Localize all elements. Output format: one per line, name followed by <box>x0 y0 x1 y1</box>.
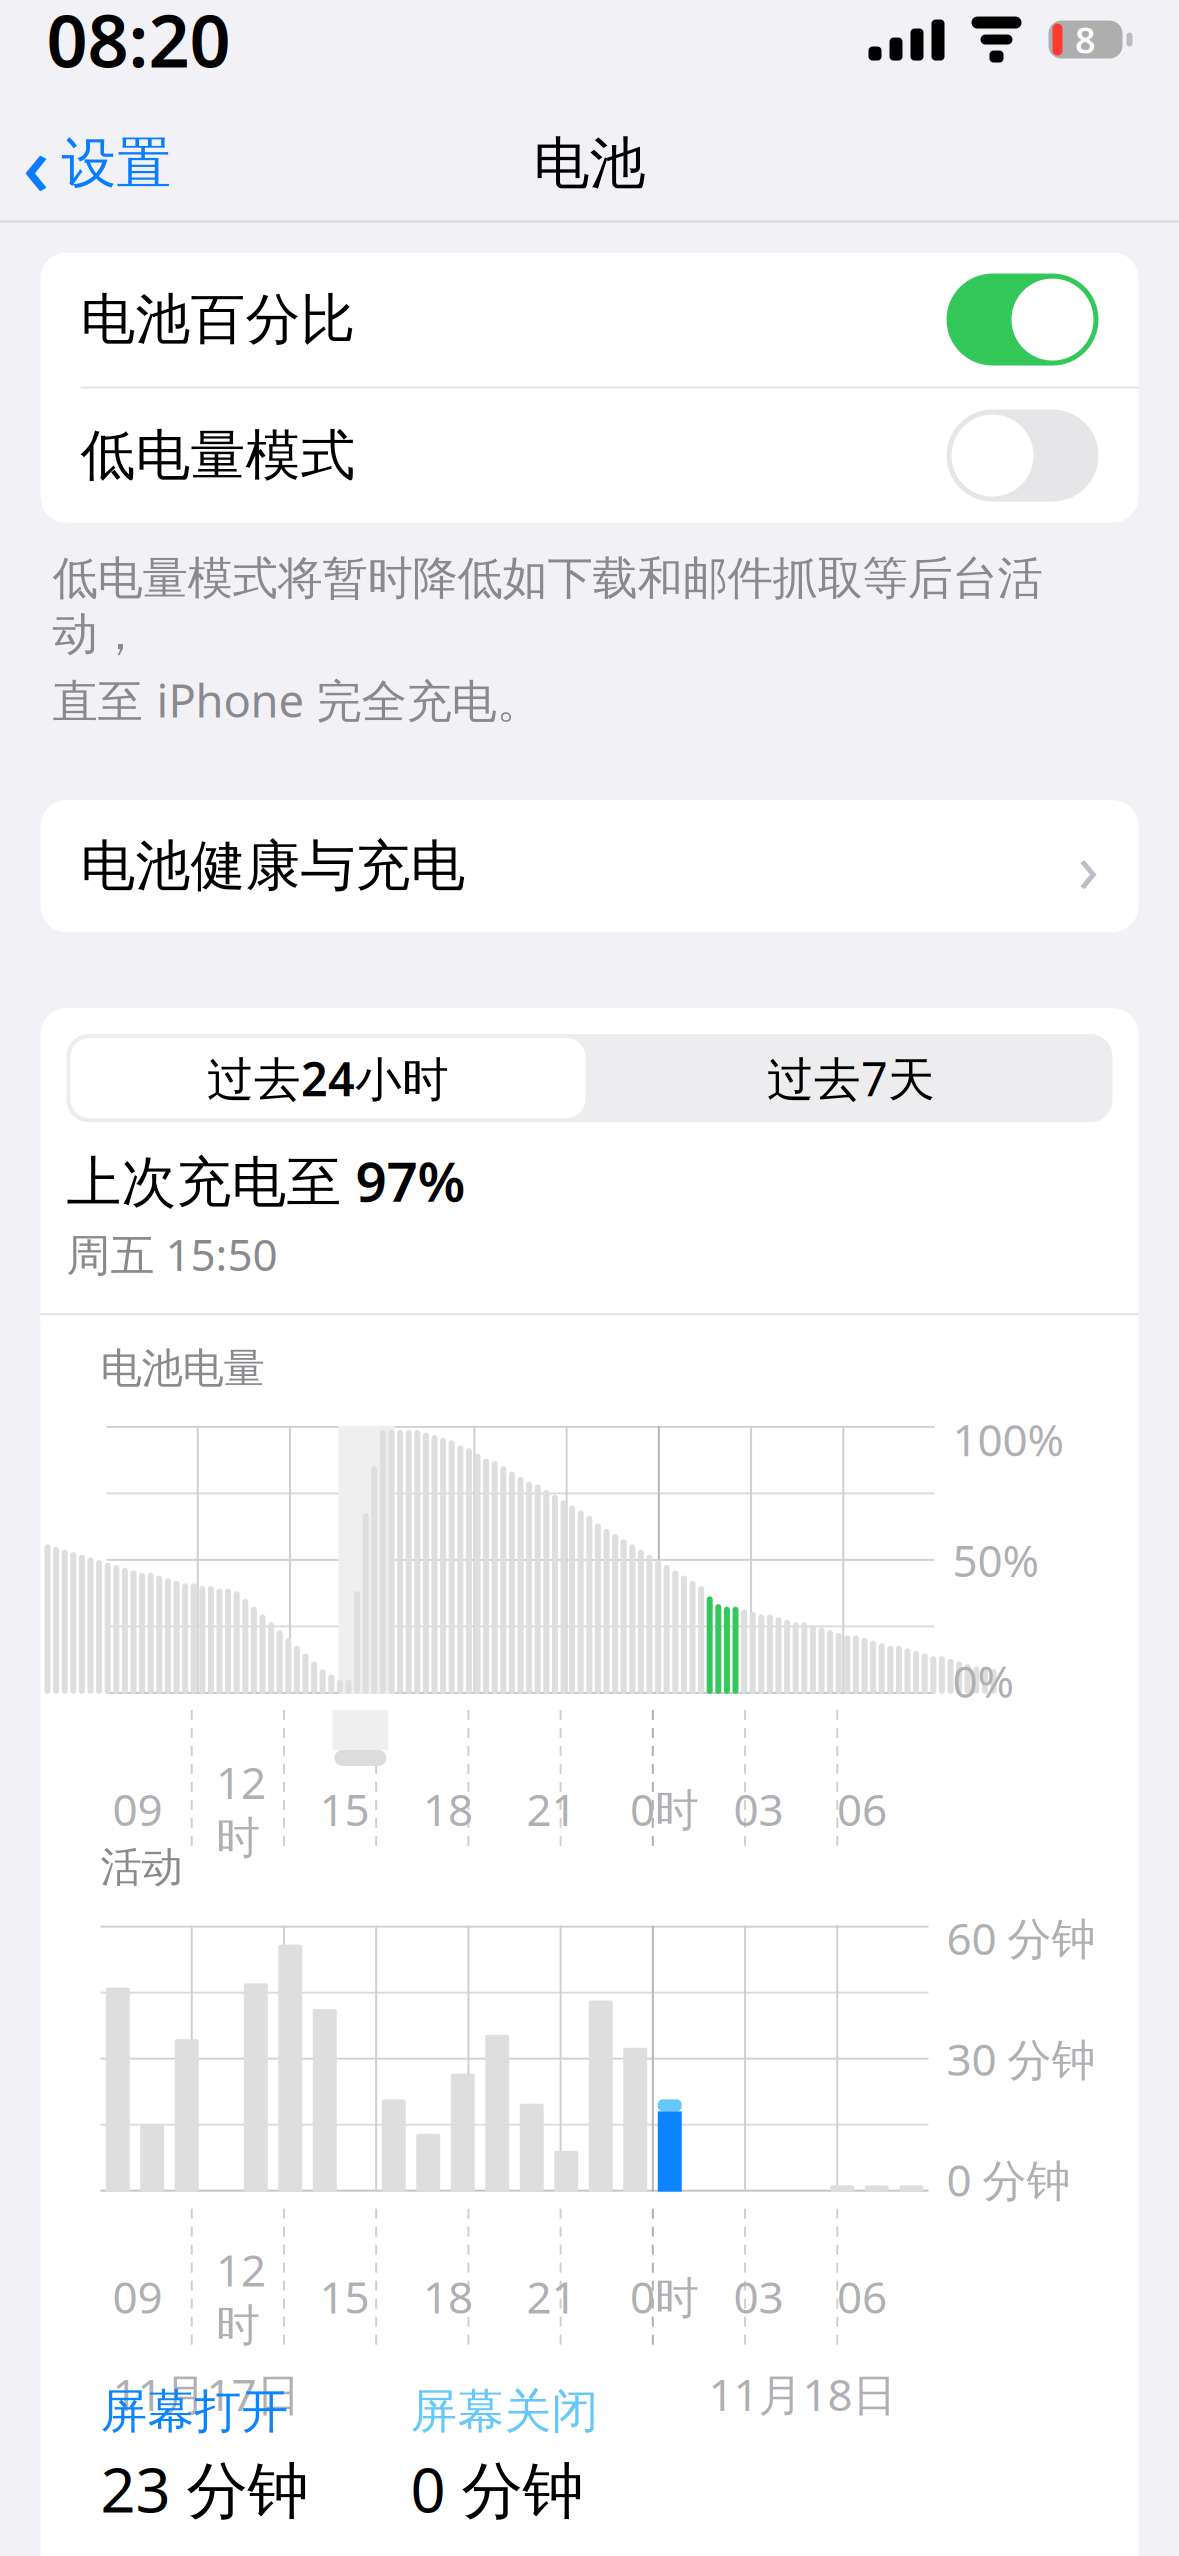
staticText: › <box>1077 820 1098 912</box>
button[interactable]: 电池百分比 <box>40 253 1138 387</box>
staticText: 15 <box>319 2267 369 2326</box>
staticText: 18 <box>423 2267 473 2326</box>
staticText: 0 分钟 <box>946 2150 1070 2209</box>
staticText: ‹ <box>22 109 49 218</box>
staticText: 60 分钟 <box>946 1909 1095 1967</box>
staticText: 电池百分比 <box>80 286 355 353</box>
button[interactable]: 电池健康与充电 <box>40 800 1138 932</box>
staticText: 设置 <box>61 130 171 197</box>
staticText: 0时 <box>630 1780 699 1838</box>
button[interactable]: 过去24小时 <box>66 1034 589 1122</box>
staticText: 12时 <box>216 1753 266 1865</box>
staticText: 03 <box>733 1780 783 1838</box>
staticText: 21 <box>526 1780 576 1838</box>
staticText: 11月17日 <box>112 2365 300 2423</box>
button[interactable]: 低电量模式 <box>40 389 1138 523</box>
staticText: 0 分钟 <box>410 2448 583 2529</box>
staticText: 03 <box>733 2267 783 2326</box>
staticText: 低电量模式将暂时降低如下载和邮件抓取等后台活动， <box>52 551 1042 662</box>
staticText: 11月18日 <box>708 2365 896 2423</box>
staticText: 电池电量 <box>100 1343 264 1394</box>
button[interactable]: ‹ <box>0 99 171 228</box>
button[interactable]: 过去7天 <box>589 1034 1112 1122</box>
staticText: 06 <box>837 2267 887 2326</box>
staticText: 直至 iPhone 完全充电。 <box>52 670 541 730</box>
staticText: 8 <box>1075 16 1096 63</box>
staticText: 09 <box>112 1780 162 1838</box>
staticText: 30 分钟 <box>946 2029 1095 2088</box>
staticText: 屏幕关闭 <box>410 2383 598 2440</box>
staticText: 过去24小时 <box>207 1047 449 1109</box>
staticText: 过去7天 <box>767 1047 935 1109</box>
staticText: 12时 <box>216 2240 266 2353</box>
staticText: 50% <box>952 1531 1039 1589</box>
staticText: 0时 <box>630 2267 699 2326</box>
staticText: 100% <box>952 1410 1064 1468</box>
staticText: 21 <box>526 2267 576 2326</box>
staticText: 09 <box>112 2267 162 2326</box>
staticText: 06 <box>837 1780 887 1838</box>
staticText: 电池 <box>533 129 645 198</box>
staticText: 活动 <box>100 1842 182 1893</box>
staticText: 屏幕打开 <box>100 2383 288 2440</box>
staticText: 电池健康与充电 <box>80 832 465 900</box>
staticText: 周五 15:50 <box>66 1225 277 1283</box>
staticText: 上次充电至 97% <box>66 1144 465 1217</box>
staticText: 15 <box>319 1780 369 1838</box>
staticText: 0% <box>952 1651 1014 1710</box>
staticText: 23 分钟 <box>100 2448 308 2529</box>
staticText: 08:20 <box>46 0 230 87</box>
staticText: 18 <box>423 1780 473 1838</box>
staticText: 低电量模式 <box>80 422 355 489</box>
